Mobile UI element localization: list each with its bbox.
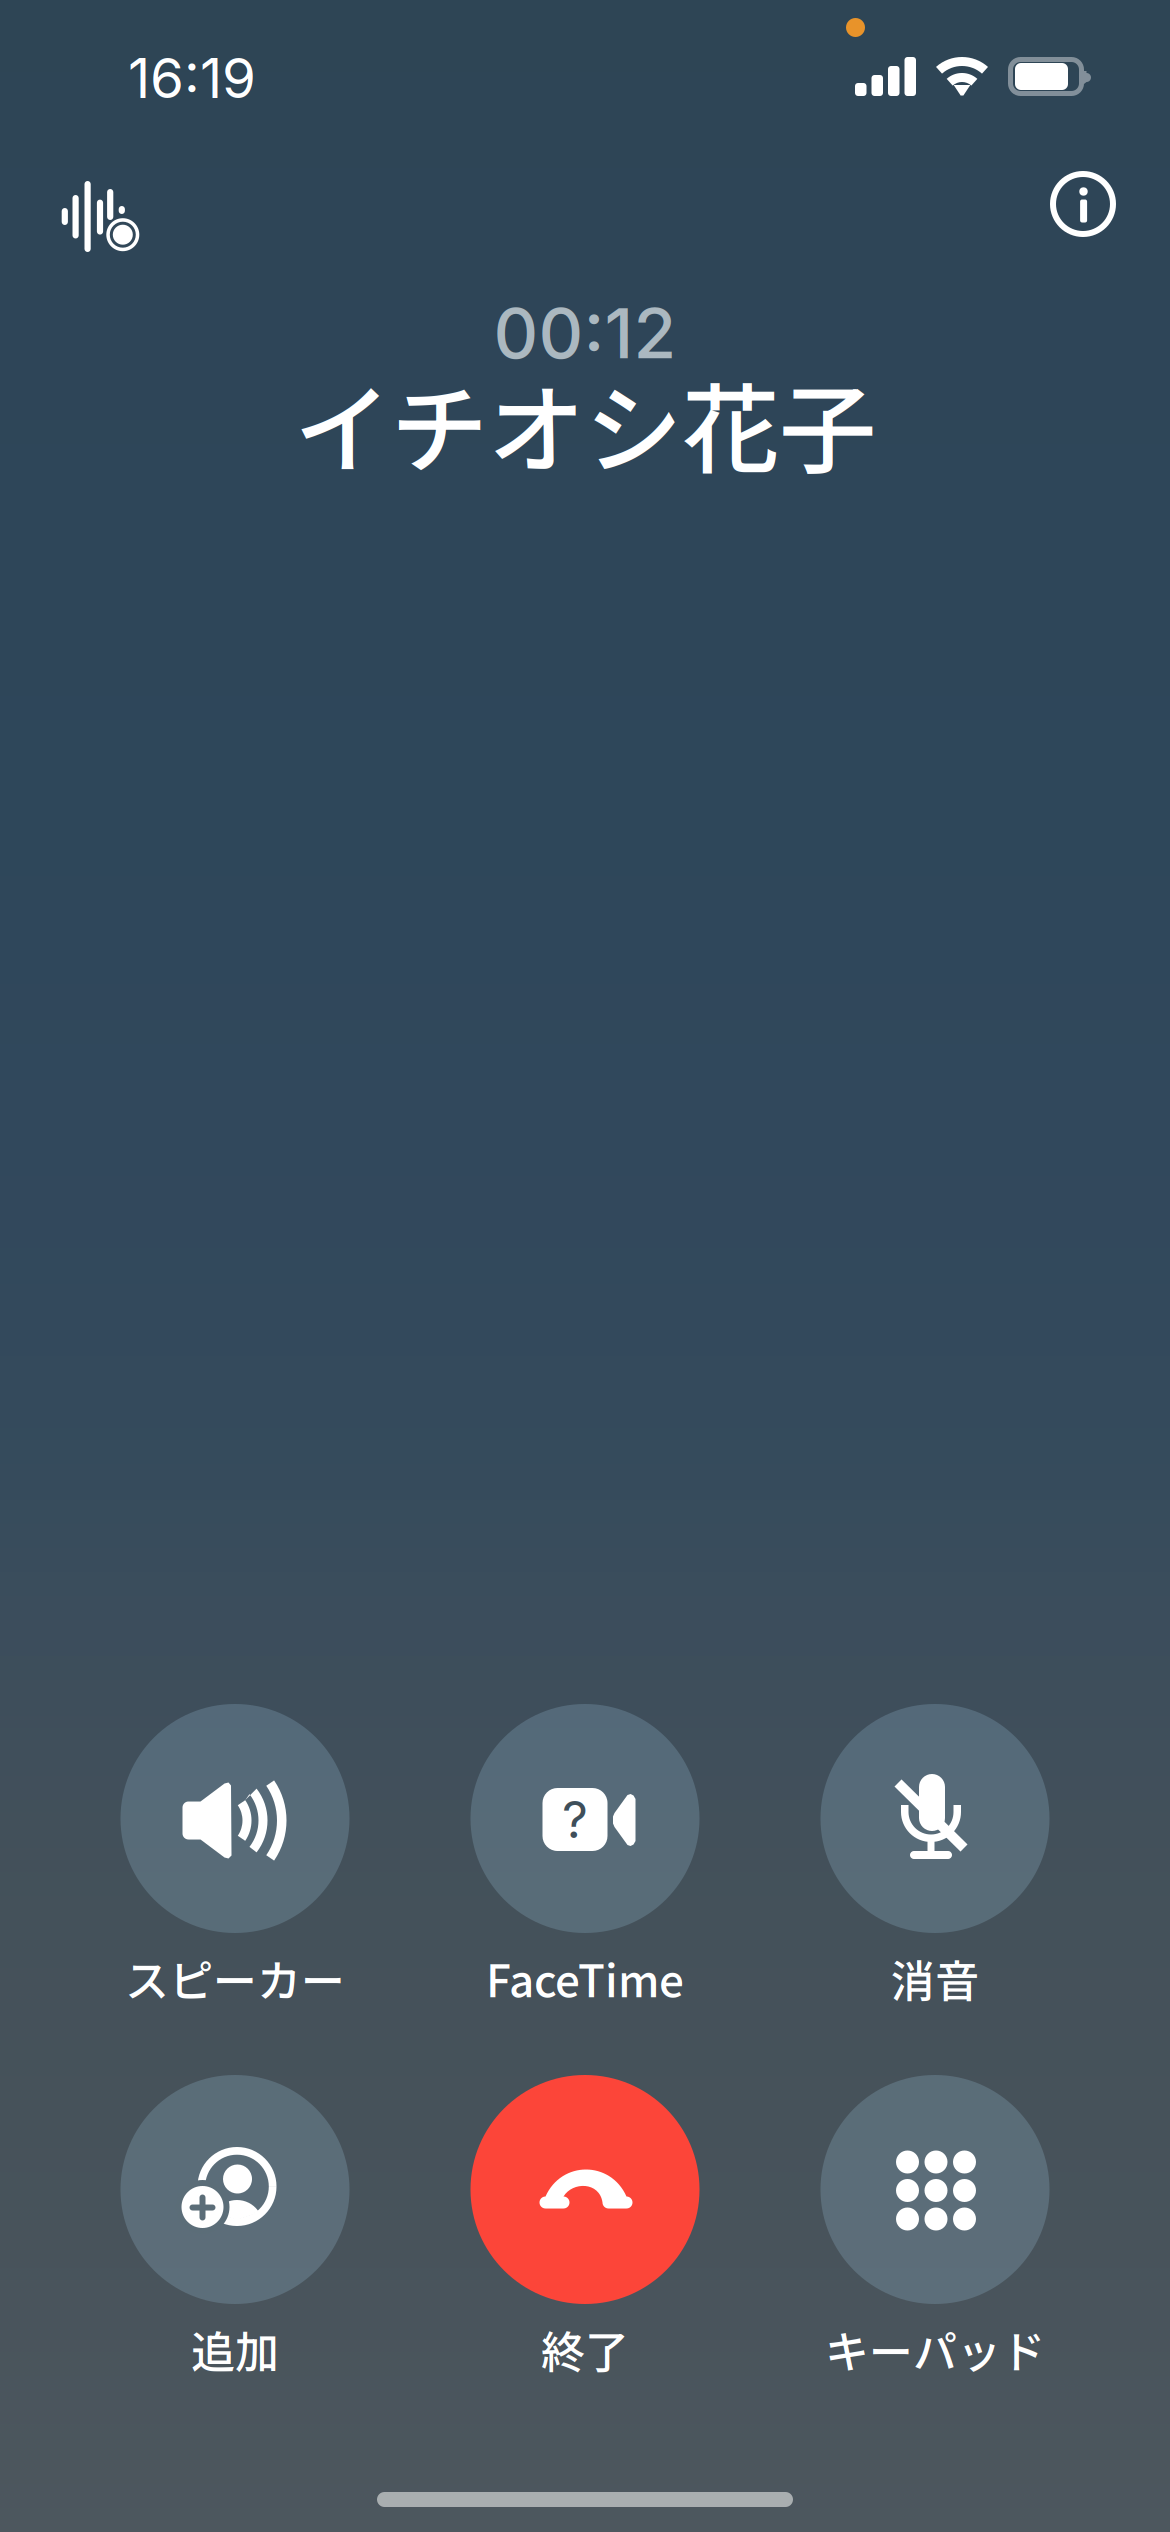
staticText: 消音 <box>891 1946 979 2010</box>
staticText: キーパッド <box>825 2317 1045 2381</box>
staticText: FaceTime <box>486 1946 684 2010</box>
staticText: ? <box>562 1789 588 1850</box>
button[interactable]: ? <box>415 1704 755 2004</box>
staticText: イチオシ花子 <box>294 352 876 493</box>
button[interactable]: 消音 <box>765 1704 1105 2004</box>
staticText: 00:12 <box>493 291 676 375</box>
button[interactable]: 追加 <box>65 2075 405 2375</box>
button[interactable]: スピーカー <box>65 1704 405 2004</box>
button[interactable]: Call details <box>1018 139 1148 269</box>
staticText: 終了 <box>541 2317 629 2381</box>
button[interactable]: キーパッド <box>765 2075 1105 2375</box>
staticText: 16:19 <box>128 45 256 111</box>
staticText: スピーカー <box>125 1946 345 2010</box>
button[interactable]: 終了 <box>415 2075 755 2375</box>
button[interactable]: Voice isolation <box>30 145 170 276</box>
staticText: 追加 <box>191 2317 279 2381</box>
